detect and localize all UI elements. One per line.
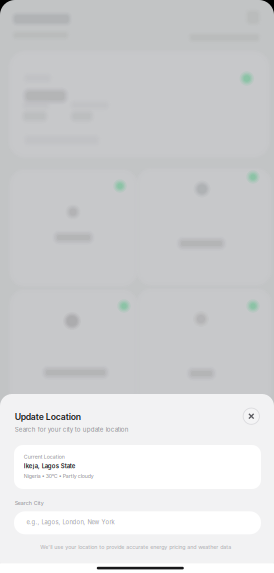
staticText: Nigeria • 30°C • Partly cloudy [24, 473, 94, 479]
staticText: Update Location [15, 411, 81, 422]
staticText: Search for your city to update location [15, 426, 129, 433]
button[interactable]: Close [240, 405, 262, 427]
button[interactable]: e.g., Lagos, London, New York [14, 511, 261, 534]
staticText: Current Location [24, 454, 65, 460]
staticText: Search City [15, 500, 44, 506]
staticText: e.g., Lagos, London, New York [27, 519, 115, 526]
staticText: Ikeja, Lagos State [24, 462, 76, 470]
staticText: We'll use your location to provide accur… [40, 544, 231, 550]
button[interactable]: Current Location [14, 445, 261, 489]
